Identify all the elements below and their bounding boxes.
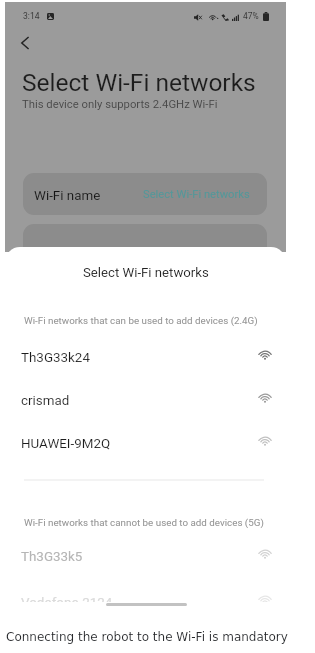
staticText: Th3G33k5 bbox=[21, 549, 83, 565]
staticText: 47% bbox=[243, 11, 259, 21]
button[interactable]: Vodafone-2124 bbox=[5, 586, 286, 602]
button[interactable]: Th3G33k5 bbox=[5, 540, 286, 574]
staticText: Connecting the robot to the Wi-Fi is man… bbox=[6, 630, 288, 644]
button[interactable]: crismad bbox=[5, 384, 286, 418]
staticText: Select Wi-Fi networks bbox=[143, 188, 250, 201]
staticText: Select Wi-Fi networks bbox=[83, 265, 209, 280]
staticText: crismad bbox=[21, 393, 70, 409]
staticText: Wi-Fi networks that can be used to add d… bbox=[24, 315, 258, 326]
staticText: Wi-Fi networks that cannot be used to ad… bbox=[24, 517, 264, 528]
button[interactable]: Th3G33k24 bbox=[5, 341, 286, 375]
staticText: Vodafone-2124 bbox=[21, 595, 113, 602]
staticText: 3:14 bbox=[23, 11, 40, 21]
button[interactable]: Back bbox=[15, 29, 43, 57]
staticText: Select Wi-Fi networks bbox=[22, 68, 256, 97]
button[interactable]: Wi-Fi name bbox=[23, 173, 267, 215]
staticText: Wi-Fi name bbox=[34, 188, 101, 204]
staticText: HUAWEI-9M2Q bbox=[21, 436, 111, 452]
button[interactable]: HUAWEI-9M2Q bbox=[5, 427, 286, 461]
staticText: This device only supports 2.4GHz Wi-Fi bbox=[22, 98, 218, 111]
staticText: Th3G33k24 bbox=[21, 350, 90, 366]
